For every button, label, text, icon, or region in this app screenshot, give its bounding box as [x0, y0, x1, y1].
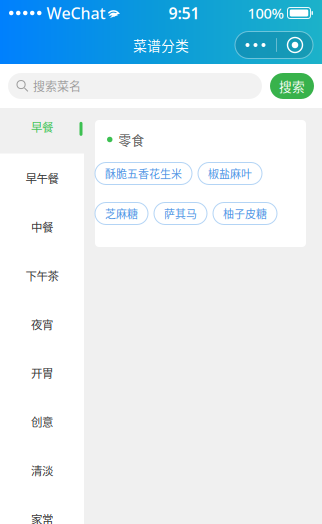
staticText: 搜索 — [279, 77, 305, 95]
button[interactable]: 中餐 — [0, 202, 84, 251]
button[interactable]: 早餐 — [0, 108, 84, 154]
button[interactable]: 夜宵 — [0, 300, 84, 348]
staticText: 创意 — [31, 413, 53, 430]
button[interactable]: 清淡 — [0, 446, 84, 495]
staticText: 家常 — [31, 511, 53, 524]
button[interactable]: More — [235, 31, 276, 58]
button[interactable]: Close — [277, 31, 313, 58]
staticText: 100% — [247, 3, 283, 23]
button[interactable]: 创意 — [0, 397, 84, 446]
staticText: WeChat — [46, 2, 105, 24]
staticText: 搜索菜名 — [33, 77, 81, 95]
staticText: 下午茶 — [25, 267, 58, 284]
staticText: 酥脆五香花生米 — [105, 166, 182, 181]
button[interactable]: 早午餐 — [0, 154, 84, 202]
staticText: 中餐 — [31, 218, 53, 235]
staticText: 9:51 — [168, 2, 199, 24]
staticText: 萨其马 — [164, 206, 197, 221]
staticText: 柚子皮糖 — [223, 206, 267, 221]
button[interactable]: 柚子皮糖 — [213, 202, 277, 224]
button[interactable]: 椒盐麻叶 — [198, 162, 262, 184]
staticText: 芝麻糖 — [105, 206, 138, 221]
staticText: 椒盐麻叶 — [208, 166, 252, 181]
staticText: 清淡 — [31, 462, 53, 478]
staticText: 零食 — [118, 130, 144, 148]
staticText: 早餐 — [31, 118, 53, 135]
button[interactable]: 搜索 — [270, 73, 314, 99]
button[interactable]: 家常 — [0, 495, 84, 524]
button[interactable]: 芝麻糖 — [95, 202, 148, 224]
staticText: 早午餐 — [25, 170, 58, 186]
staticText: 夜宵 — [31, 316, 53, 332]
button[interactable]: 酥脆五香花生米 — [95, 162, 192, 184]
button[interactable]: 萨其马 — [154, 202, 207, 224]
staticText: 开胃 — [31, 364, 53, 381]
button[interactable]: 下午茶 — [0, 251, 84, 300]
staticText: 菜谱分类 — [133, 35, 189, 55]
button[interactable]: 开胃 — [0, 348, 84, 397]
